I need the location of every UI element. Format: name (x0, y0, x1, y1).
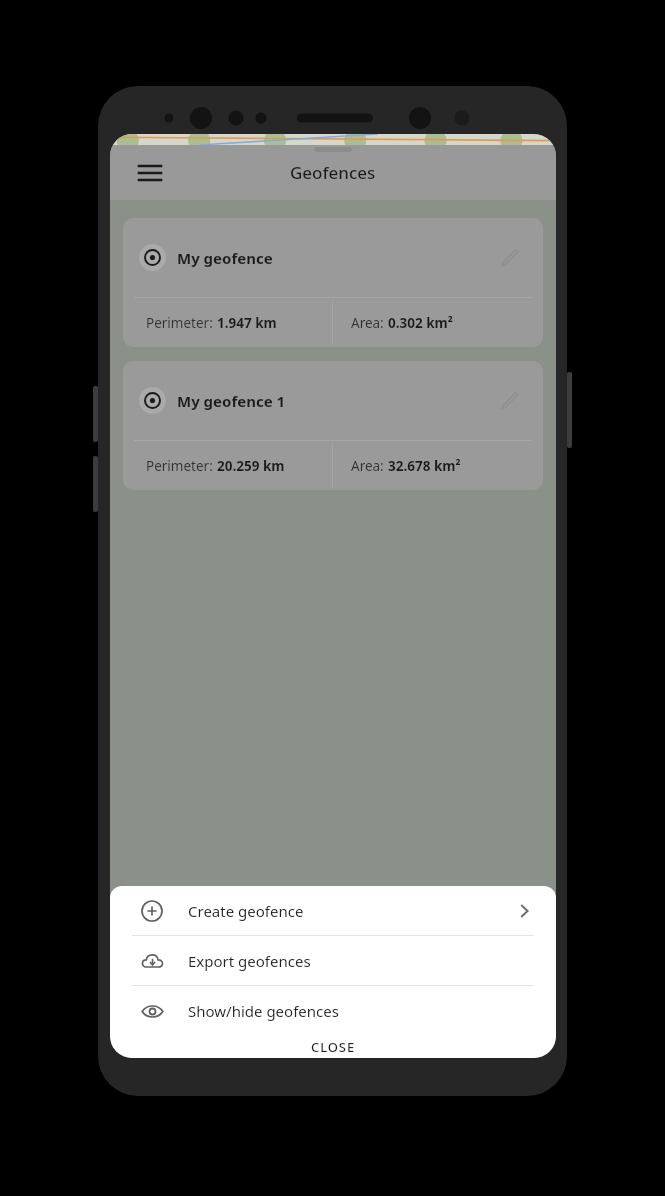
button[interactable]: CLOSE (110, 1035, 556, 1058)
staticText: Create geofence (188, 901, 304, 921)
staticText: 32.678 km² (388, 457, 461, 475)
button[interactable]: Show/hide geofences (110, 986, 556, 1035)
button[interactable]: Open navigation drawer (127, 150, 173, 196)
staticText: Geofences (290, 161, 376, 184)
staticText: My geofence 1 (177, 391, 286, 411)
button[interactable]: My geofence (123, 218, 543, 347)
staticText: Show/hide geofences (188, 1001, 339, 1021)
staticText: Area: (351, 314, 388, 332)
staticText: 20.259 km (217, 457, 285, 475)
button[interactable]: Create geofence (110, 886, 556, 935)
staticText: 1.947 km (217, 314, 277, 332)
staticText: Export geofences (188, 951, 311, 971)
staticText: Area: (351, 457, 388, 475)
button[interactable]: Export geofences (110, 936, 556, 985)
staticText: Perimeter: (146, 314, 217, 332)
staticText: Perimeter: (146, 457, 217, 475)
staticText: 0.302 km² (388, 314, 453, 332)
button[interactable]: My geofence 1 (123, 361, 543, 490)
staticText: CLOSE (311, 1038, 356, 1056)
staticText: My geofence (177, 248, 273, 268)
